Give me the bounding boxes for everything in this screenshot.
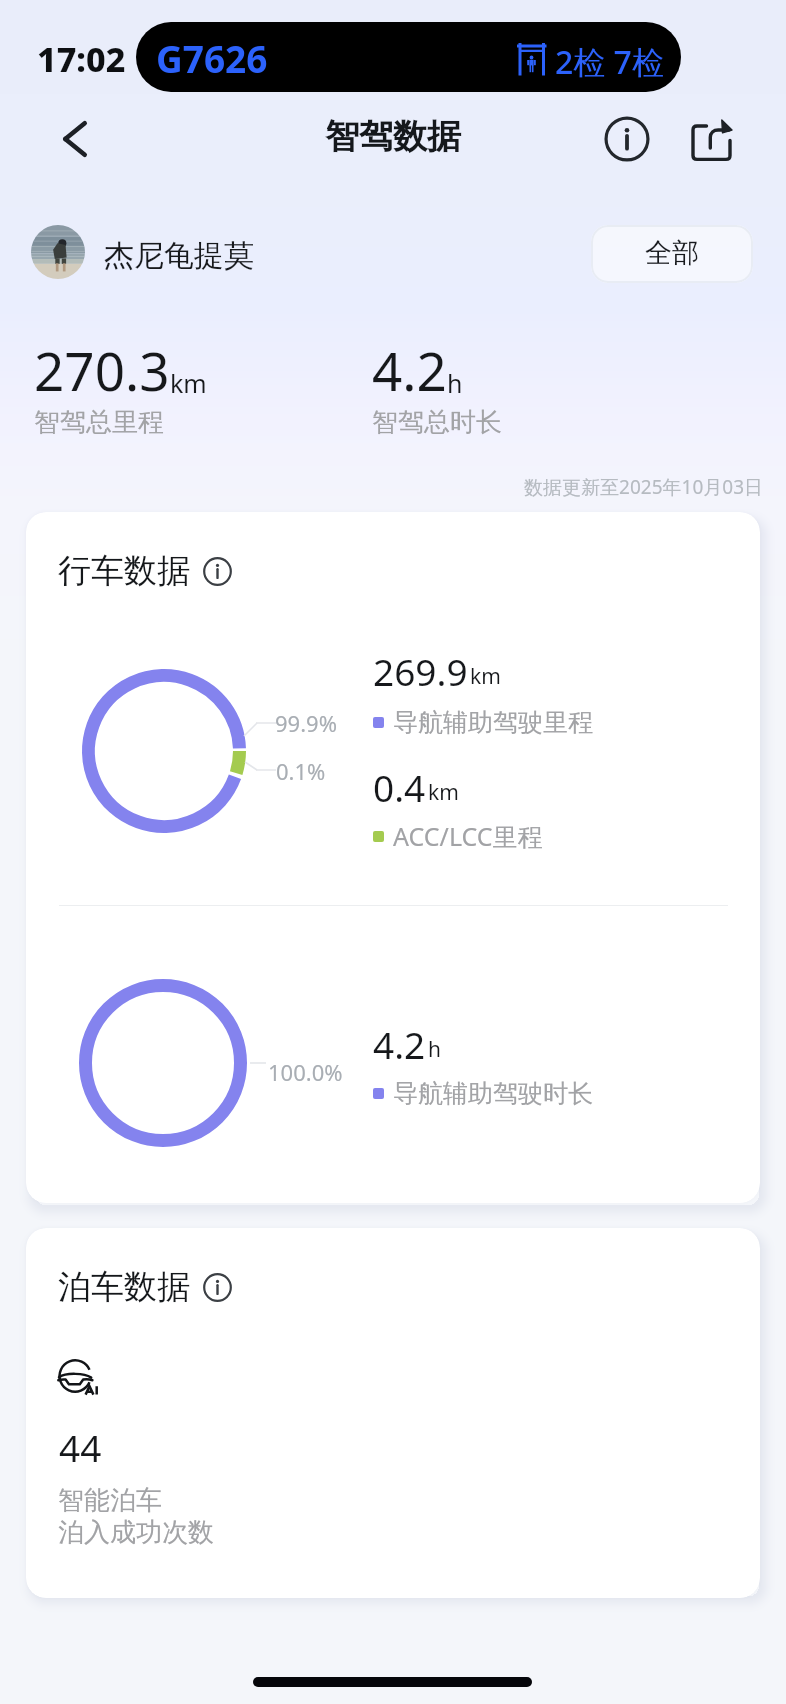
- staticText: km: [470, 662, 501, 691]
- button[interactable]: 全部: [591, 225, 753, 283]
- staticText: 泊车数据: [58, 1266, 190, 1308]
- staticText: 行车数据: [58, 550, 190, 592]
- staticText: 数据更新至2025年10月03日: [0, 474, 763, 500]
- button[interactable]: 杰尼龟提莫: [28, 222, 258, 282]
- button[interactable]: Info: [599, 111, 654, 166]
- staticText: 2检 7检: [555, 40, 664, 84]
- staticText: G7626: [156, 33, 268, 83]
- button[interactable]: Share: [691, 118, 743, 170]
- staticText: ACC/LCC里程: [393, 819, 543, 853]
- staticText: 导航辅助驾驶里程: [393, 707, 593, 738]
- staticText: 泊入成功次数: [58, 1516, 214, 1549]
- staticText: 导航辅助驾驶时长: [393, 1078, 593, 1109]
- staticText: h: [428, 1035, 441, 1064]
- staticText: 17:02: [37, 36, 126, 82]
- staticText: 智驾数据: [0, 115, 786, 158]
- staticText: 0.4: [373, 762, 426, 812]
- staticText: 杰尼龟提莫: [104, 237, 254, 275]
- staticText: km: [428, 778, 459, 807]
- staticText: 270.3: [34, 334, 170, 406]
- staticText: 智驾总里程: [34, 406, 164, 439]
- button[interactable]: 泊车数据 说明: [203, 1273, 232, 1302]
- staticText: 99.9%: [275, 708, 337, 738]
- staticText: 44: [59, 1422, 102, 1472]
- staticText: 智驾总时长: [372, 406, 502, 439]
- staticText: 269.9: [373, 646, 468, 696]
- button[interactable]: Back: [45, 109, 105, 169]
- staticText: h: [447, 366, 463, 400]
- staticText: 0.1%: [276, 756, 326, 786]
- staticText: 100.0%: [268, 1057, 343, 1087]
- staticText: 全部: [645, 236, 699, 270]
- staticText: km: [170, 366, 207, 400]
- staticText: 智能泊车: [58, 1484, 162, 1517]
- staticText: 4.2: [372, 334, 447, 406]
- staticText: 4.2: [373, 1019, 426, 1069]
- button[interactable]: 行车数据 说明: [203, 557, 232, 586]
